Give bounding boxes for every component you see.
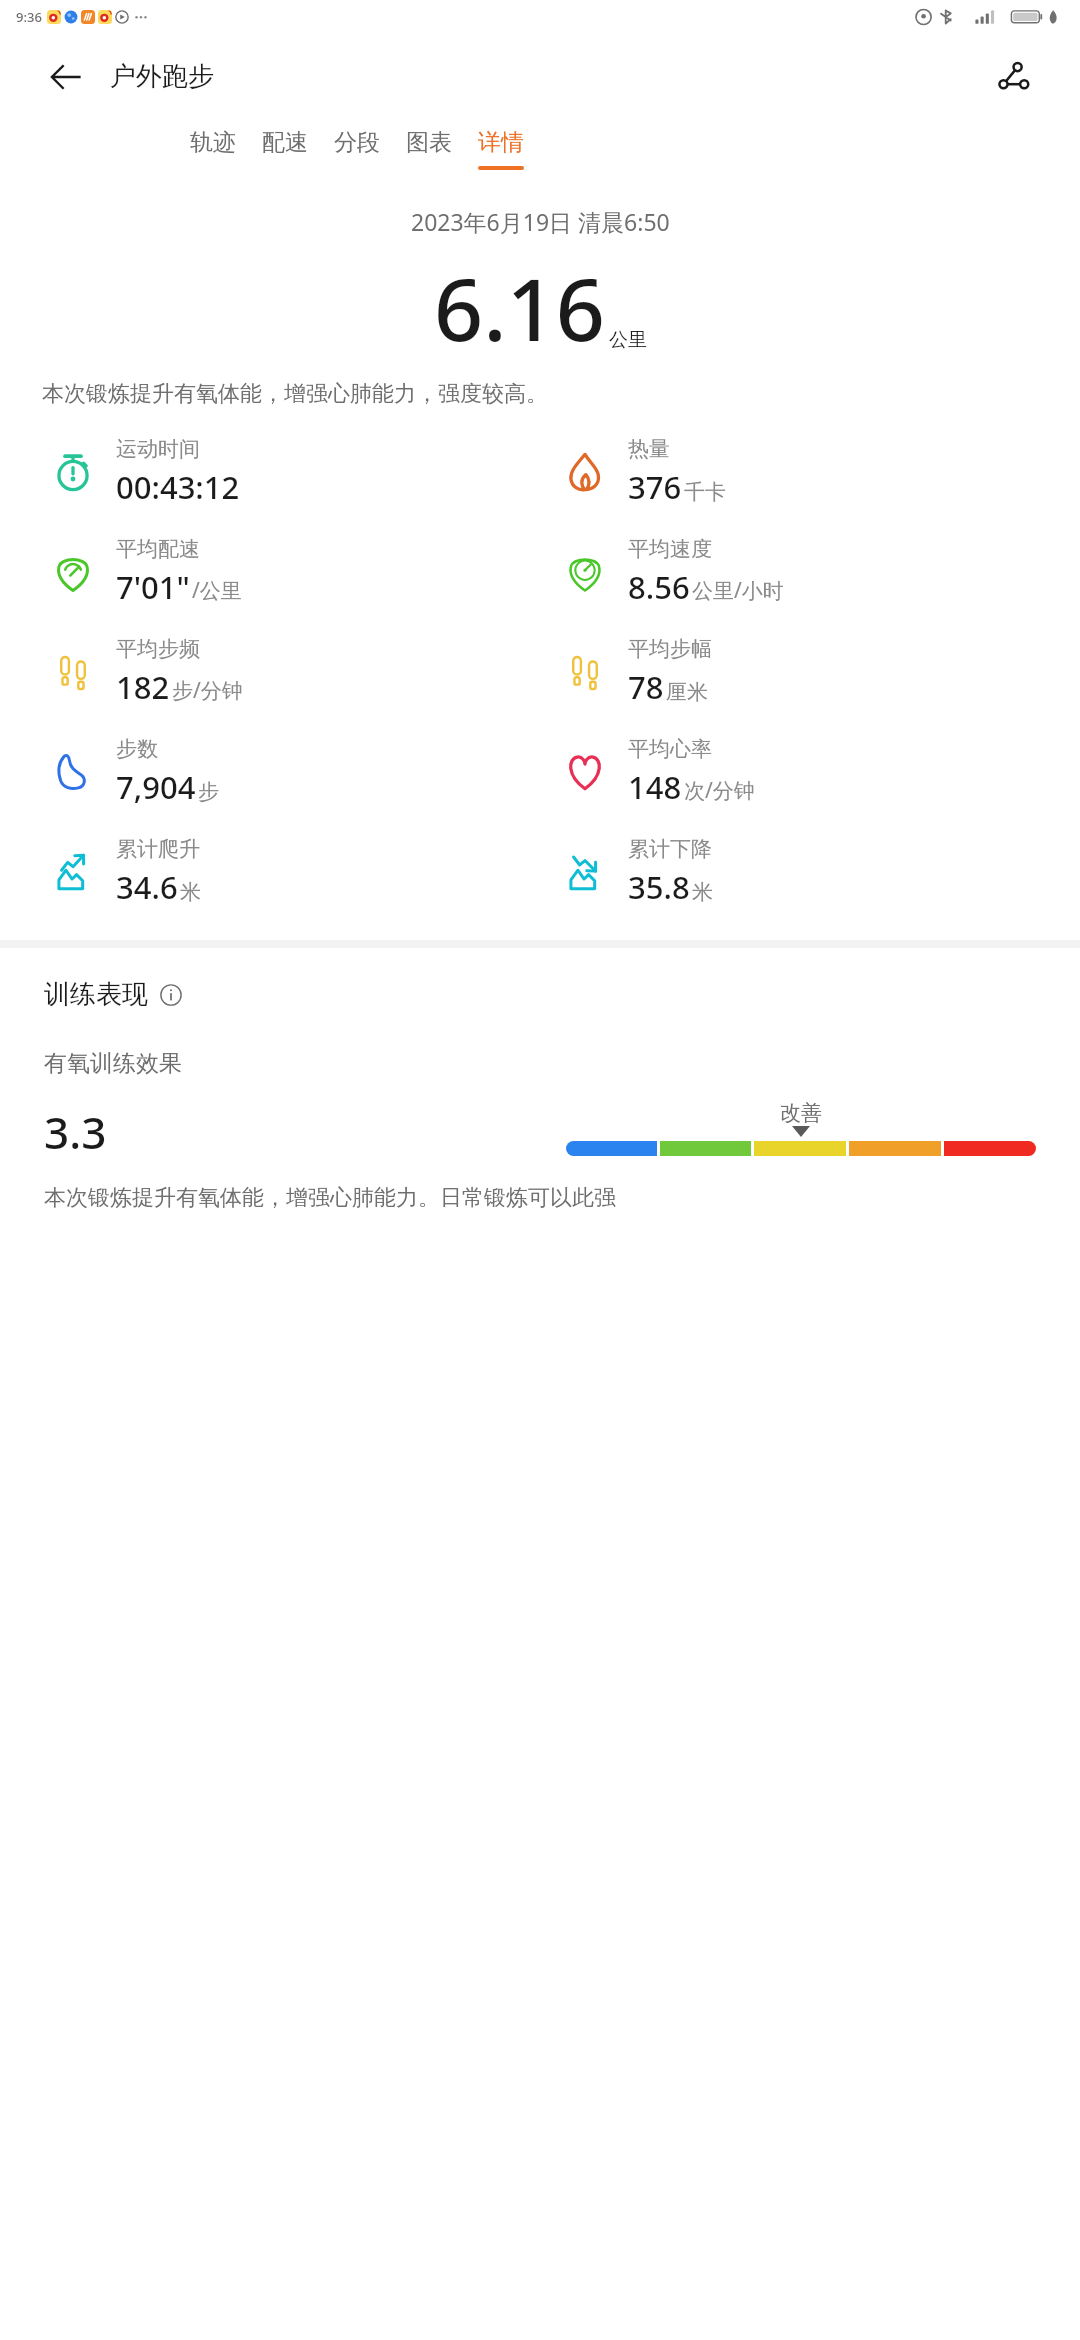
staticText: 8.56 xyxy=(628,566,690,608)
staticText: 轨迹 xyxy=(190,128,236,157)
staticText: 千卡 xyxy=(684,479,726,505)
staticText: 7'01" xyxy=(116,566,190,608)
staticText: 热量 xyxy=(628,436,670,462)
button[interactable]: Back xyxy=(40,51,92,103)
staticText: 平均步频 xyxy=(116,636,200,662)
staticText: 有氧训练效果 xyxy=(44,1049,182,1078)
staticText: 运动时间 xyxy=(116,436,200,462)
staticText: 平均步幅 xyxy=(628,636,712,662)
staticText: 步 xyxy=(198,779,219,805)
staticText: 改善 xyxy=(780,1100,822,1126)
staticText: 34.6 xyxy=(116,866,178,908)
staticText: 78 xyxy=(628,666,664,708)
staticText: 3.3 xyxy=(44,1102,107,1162)
staticText: /公里 xyxy=(192,576,242,605)
staticText: 本次锻炼提升有氧体能，增强心肺能力，强度较高。 xyxy=(42,380,1038,408)
staticText: 平均速度 xyxy=(628,536,712,562)
staticText: 图表 xyxy=(406,128,452,157)
staticText: 米 xyxy=(692,879,713,905)
staticText: 步数 xyxy=(116,736,158,762)
staticText: 148 xyxy=(628,766,682,808)
staticText: 训练表现 xyxy=(44,978,148,1011)
button[interactable]: Share xyxy=(988,51,1040,103)
staticText: 9:36 xyxy=(16,8,42,26)
button[interactable]: 分段 xyxy=(334,120,380,178)
button[interactable]: 平均步频 xyxy=(44,622,540,722)
staticText: 累计爬升 xyxy=(116,836,200,862)
staticText: 步/分钟 xyxy=(172,676,243,705)
button[interactable]: 配速 xyxy=(262,120,308,178)
button[interactable]: 详情 xyxy=(478,120,524,178)
button[interactable]: 运动时间 xyxy=(44,422,540,522)
button[interactable]: Info xyxy=(158,982,184,1008)
staticText: 详情 xyxy=(478,128,524,157)
staticText: 户外跑步 xyxy=(110,60,214,93)
staticText: 2023年6月19日 清晨6:50 xyxy=(411,206,670,237)
button[interactable]: 平均速度 xyxy=(556,522,1080,622)
staticText: 376 xyxy=(628,466,682,508)
button[interactable]: 步数 xyxy=(44,722,540,822)
staticText: 次/分钟 xyxy=(684,776,755,805)
staticText: 公里/小时 xyxy=(692,576,784,605)
staticText: 本次锻炼提升有氧体能，增强心肺能力。日常锻炼可以此强 xyxy=(44,1184,616,1212)
staticText: 配速 xyxy=(262,128,308,157)
button[interactable]: 轨迹 xyxy=(190,120,236,178)
staticText: 分段 xyxy=(334,128,380,157)
button[interactable]: 累计爬升 xyxy=(44,822,540,922)
button[interactable]: 平均步幅 xyxy=(556,622,1080,722)
button[interactable]: 热量 xyxy=(556,422,1080,522)
staticText: 平均配速 xyxy=(116,536,200,562)
staticText: 公里 xyxy=(609,328,647,352)
staticText: 35.8 xyxy=(628,866,690,908)
button[interactable]: 平均配速 xyxy=(44,522,540,622)
staticText: 182 xyxy=(116,666,170,708)
staticText: 厘米 xyxy=(666,679,708,705)
button[interactable]: 平均心率 xyxy=(556,722,1080,822)
button[interactable]: 累计下降 xyxy=(556,822,1080,922)
staticText: 米 xyxy=(180,879,201,905)
staticText: 累计下降 xyxy=(628,836,712,862)
button[interactable]: 图表 xyxy=(406,120,452,178)
staticText: 7,904 xyxy=(116,766,196,808)
staticText: 6.16 xyxy=(434,249,605,366)
staticText: 00:43:12 xyxy=(116,466,240,508)
staticText: 平均心率 xyxy=(628,736,712,762)
